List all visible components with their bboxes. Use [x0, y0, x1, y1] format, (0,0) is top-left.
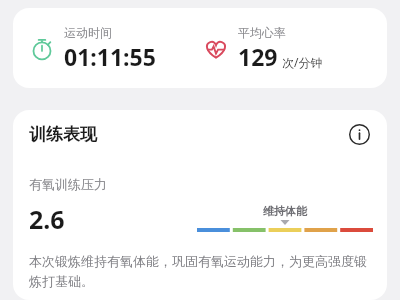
staticText: 有氧训练压力	[29, 176, 107, 192]
staticText: 2.6	[29, 202, 65, 236]
staticText: 本次锻炼维持有氧体能，巩固有氧运动能力，为更高强度锻炼打基础。	[29, 253, 367, 290]
staticText: 01:11:55	[64, 41, 156, 72]
staticText: 次/分钟	[282, 54, 323, 70]
staticText: 运动时间	[64, 25, 112, 40]
staticText: 维持体能	[263, 204, 307, 218]
staticText: 训练表现	[29, 124, 97, 145]
button[interactable]: 维持体能	[197, 204, 373, 236]
button[interactable]: 说明	[345, 120, 373, 148]
staticText: 平均心率	[238, 25, 286, 40]
button[interactable]: 运动时间	[29, 25, 203, 72]
button[interactable]: 平均心率	[203, 25, 377, 72]
staticText: 129	[238, 41, 278, 72]
